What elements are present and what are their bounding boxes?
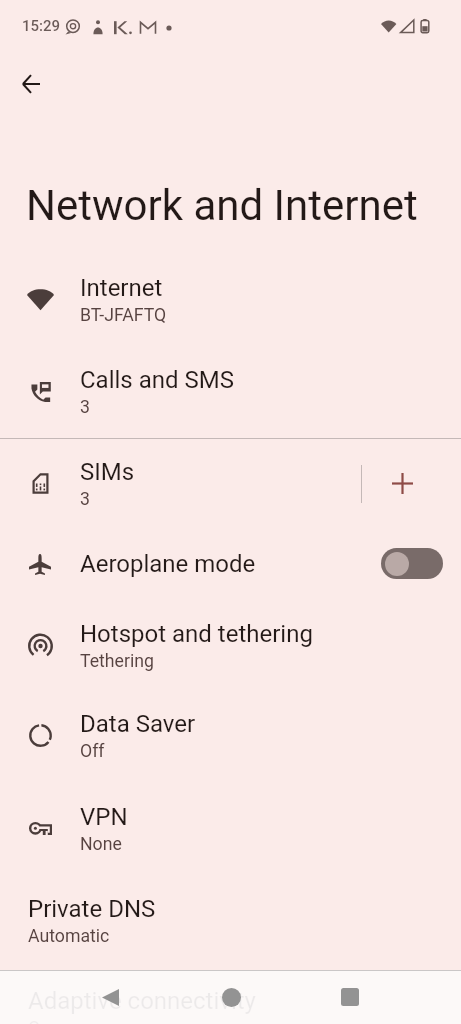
- button[interactable]: Hotspot and tethering: [0, 600, 461, 691]
- button[interactable]: Navigate up: [3, 56, 59, 112]
- button[interactable]: Back: [90, 970, 130, 1024]
- button[interactable]: Aeroplane mode: [381, 548, 443, 579]
- button[interactable]: Data Saver: [0, 690, 461, 781]
- staticText: VPN: [80, 803, 128, 831]
- staticText: Private DNS: [28, 895, 156, 923]
- staticText: Calls and SMS: [80, 366, 234, 394]
- button[interactable]: Adaptive connectivity: [0, 967, 461, 1024]
- staticText: 3: [80, 489, 90, 510]
- staticText: BT-JFAFTQ: [80, 305, 167, 326]
- button[interactable]: Aeroplane mode: [0, 528, 461, 600]
- staticText: SIMs: [80, 458, 135, 486]
- staticText: 15:29: [22, 17, 61, 35]
- staticText: Internet: [80, 274, 163, 302]
- staticText: Aeroplane mode: [80, 550, 381, 578]
- button[interactable]: Private DNS: [0, 875, 461, 966]
- staticText: Adaptive connectivity: [28, 987, 256, 1015]
- button[interactable]: Internet: [0, 254, 461, 345]
- staticText: Automatic: [28, 926, 110, 947]
- button[interactable]: VPN: [0, 783, 461, 874]
- staticText: Off: [80, 741, 105, 762]
- button[interactable]: Add SIM: [362, 438, 443, 529]
- staticText: Network and Internet: [26, 181, 418, 230]
- staticText: Hotspot and tethering: [80, 620, 313, 648]
- staticText: Data Saver: [80, 710, 196, 738]
- staticText: 3: [80, 397, 90, 418]
- button[interactable]: Recent apps: [330, 970, 370, 1024]
- staticText: None: [80, 834, 122, 855]
- button[interactable]: SIMs: [0, 438, 361, 529]
- button[interactable]: Home: [211, 970, 251, 1024]
- button[interactable]: Calls and SMS: [0, 346, 461, 437]
- staticText: On: [28, 1018, 50, 1024]
- staticText: Tethering: [80, 651, 154, 672]
